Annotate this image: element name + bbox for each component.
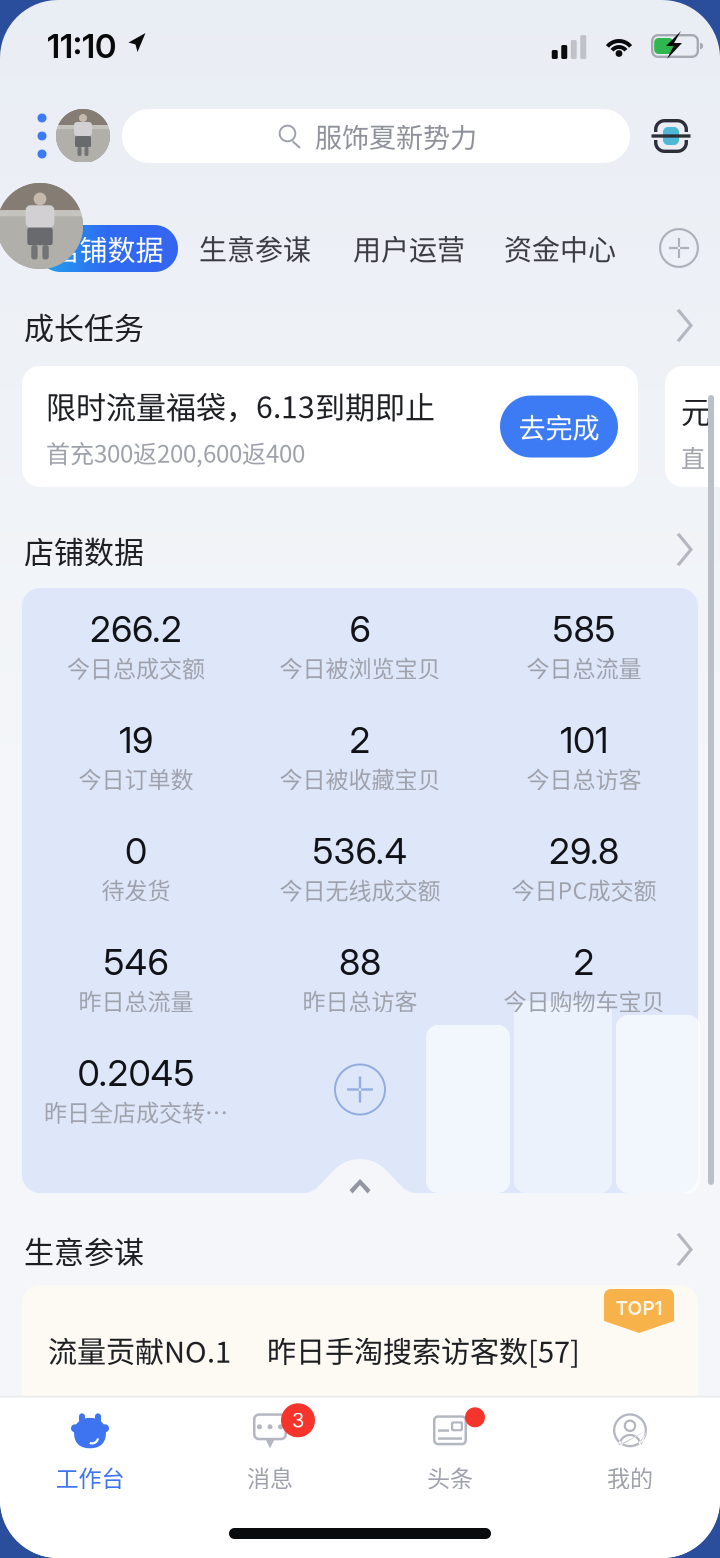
staticText: 我的 (607, 1460, 653, 1494)
staticText: 生意参谋 (24, 1228, 144, 1272)
staticText: 昨日总流量 (78, 984, 193, 1017)
button[interactable]: 6 (248, 590, 472, 701)
staticText: 流量贡献NO.1 (48, 1329, 231, 1371)
staticText: 今日被浏览宝贝 (279, 651, 440, 684)
staticText: 3 (292, 1408, 304, 1432)
button[interactable]: 服饰夏新势力 (110, 109, 642, 163)
staticText: 今日总流量 (526, 651, 641, 684)
staticText: 消息 (247, 1460, 293, 1494)
staticText: 19 (119, 718, 153, 762)
staticText: 29.8 (549, 829, 619, 873)
button[interactable]: 2 (472, 923, 696, 1034)
button[interactable]: 成长任务 (0, 290, 720, 362)
staticText: 266.2 (90, 607, 182, 651)
staticText: 今日PC成交额 (511, 873, 656, 906)
button[interactable]: 585 (472, 590, 696, 701)
button[interactable]: 266.2 (24, 590, 248, 701)
button[interactable]: 2 (248, 701, 472, 812)
button[interactable]: 101 (472, 701, 696, 812)
staticText: 生意参谋 (199, 228, 311, 268)
staticText: 今日无线成交额 (279, 873, 440, 906)
button[interactable]: 29.8 (472, 812, 696, 923)
staticText: 店铺数据 (51, 228, 163, 269)
staticText: 101 (560, 718, 608, 762)
button[interactable]: 0.2045 (24, 1034, 248, 1145)
staticText: 去完成 (518, 407, 599, 446)
staticText: 工作台 (55, 1460, 124, 1494)
button[interactable]: Add metric (248, 1034, 472, 1145)
staticText: 0 (125, 829, 147, 873)
staticText: 今日总访客 (526, 762, 641, 795)
button[interactable]: 元 (665, 366, 720, 487)
staticText: 店铺数据 (24, 528, 144, 572)
staticText: 首充300返200,600返400 (46, 435, 305, 470)
button[interactable]: 536.4 (248, 812, 472, 923)
staticText: 2 (349, 718, 370, 762)
button[interactable]: 546 (24, 923, 248, 1034)
button[interactable]: Collapse (304, 1159, 416, 1193)
staticText: 服饰夏新势力 (315, 116, 477, 156)
button[interactable]: More (28, 101, 56, 171)
staticText: 今日购物车宝贝 (503, 984, 664, 1017)
staticText: 585 (552, 607, 615, 651)
staticText: TOP1 (615, 1296, 662, 1320)
staticText: 昨日总访客 (302, 984, 417, 1017)
button[interactable]: 生意参谋 (0, 1214, 720, 1286)
button[interactable]: Add (647, 216, 711, 280)
button[interactable]: 店铺数据 (37, 225, 178, 272)
staticText: 头条 (427, 1460, 473, 1494)
staticText: 今日订单数 (78, 762, 193, 795)
button[interactable]: 3 (180, 1397, 360, 1501)
staticText: 536.4 (312, 829, 407, 873)
staticText: 今日被收藏宝贝 (279, 762, 440, 795)
button[interactable]: 工作台 (0, 1397, 180, 1501)
staticText: 546 (103, 940, 168, 984)
staticText: 限时流量福袋，6.13到期即止 (46, 383, 435, 427)
staticText: 用户运营 (353, 228, 465, 268)
staticText: 2 (573, 940, 594, 984)
button[interactable]: 19 (24, 701, 248, 812)
staticText: 昨日手淘搜索访客数[57] (267, 1329, 580, 1371)
staticText: 11:10 (47, 26, 116, 66)
button[interactable]: 生意参谋 (180, 220, 330, 276)
staticText: 今日总成交额 (67, 651, 205, 684)
staticText: 直 (681, 439, 705, 474)
button[interactable]: 用户运营 (334, 220, 484, 276)
button[interactable]: 我的 (540, 1397, 720, 1501)
button[interactable]: 店铺数据 (0, 514, 720, 586)
staticText: 元 (681, 388, 711, 431)
button[interactable]: Scan (642, 101, 700, 171)
staticText: 待发货 (101, 873, 170, 906)
button[interactable]: 限时流量福袋，6.13到期即止 (22, 366, 638, 487)
staticText: 成长任务 (24, 304, 144, 348)
staticText: 昨日全店成交转… (44, 1095, 228, 1128)
staticText: 资金中心 (504, 228, 616, 268)
staticText: 0.2045 (77, 1051, 194, 1095)
staticText: 6 (349, 607, 370, 651)
staticText: 88 (339, 940, 381, 984)
button[interactable]: 头条 (360, 1397, 540, 1501)
button[interactable]: 88 (248, 923, 472, 1034)
button[interactable]: 流量贡献NO.1 (0, 1285, 720, 1415)
button[interactable]: 资金中心 (485, 220, 635, 276)
button[interactable]: 0 (24, 812, 248, 923)
